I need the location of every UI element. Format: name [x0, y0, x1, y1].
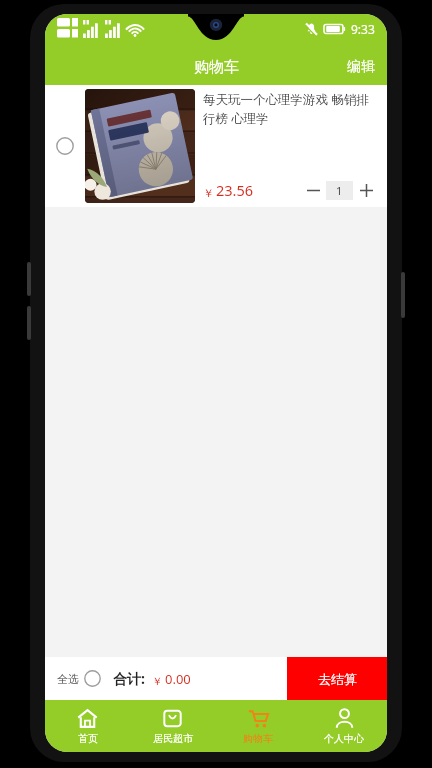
button[interactable]: 首页	[45, 700, 130, 752]
staticText: 首页	[78, 732, 98, 745]
button[interactable]: 全选	[45, 664, 107, 693]
button[interactable]: 购物车	[215, 700, 301, 752]
staticText: 每天玩一个心理学游戏 畅销排行榜 心理学	[203, 91, 377, 127]
button[interactable]: 1	[326, 181, 353, 200]
staticText: 居民超市	[153, 732, 193, 745]
button[interactable]: 编辑	[335, 52, 387, 82]
staticText: 个人中心	[324, 732, 364, 745]
button[interactable]: Select item	[45, 85, 387, 207]
staticText: ￥	[203, 186, 214, 200]
staticText: 全选	[57, 672, 79, 686]
button[interactable]: 个人中心	[301, 700, 387, 752]
staticText: 9:33	[351, 21, 375, 37]
staticText: 1	[336, 183, 343, 198]
staticText: ￥	[152, 675, 163, 688]
staticText: 去结算	[318, 671, 357, 687]
button[interactable]: Select item	[45, 85, 85, 207]
button[interactable]: 居民超市	[130, 700, 215, 752]
button[interactable]: Increase quantity	[355, 179, 377, 201]
staticText: 合计:	[113, 669, 145, 688]
staticText: 购物车	[243, 732, 273, 745]
staticText: 0.00	[165, 670, 191, 688]
button[interactable]: Decrease quantity	[302, 179, 324, 201]
staticText: 购物车	[194, 58, 239, 77]
button[interactable]: 去结算	[287, 657, 387, 700]
staticText: 编辑	[347, 58, 375, 76]
staticText: 23.56	[216, 180, 254, 200]
